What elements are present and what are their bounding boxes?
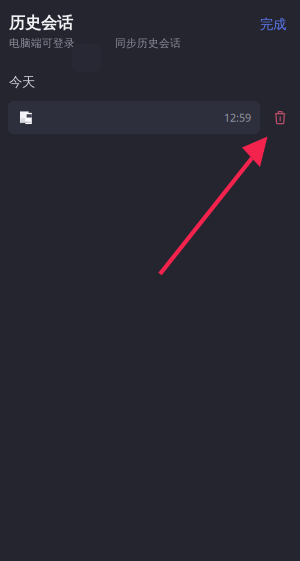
- staticText: 历史会话: [9, 13, 73, 33]
- staticText: 12:59: [224, 110, 251, 125]
- button[interactable]: 同步历史会话: [115, 37, 181, 50]
- button[interactable]: Delete conversation: [267, 101, 293, 134]
- button[interactable]: 完成: [260, 16, 286, 32]
- staticText: 完成: [260, 16, 286, 32]
- button[interactable]: 电脑端可登录: [9, 37, 75, 50]
- staticText: 同步历史会话: [115, 37, 181, 50]
- staticText: 电脑端可登录: [9, 37, 75, 50]
- button[interactable]: 12:59: [8, 101, 260, 134]
- staticText: 今天: [9, 74, 35, 90]
